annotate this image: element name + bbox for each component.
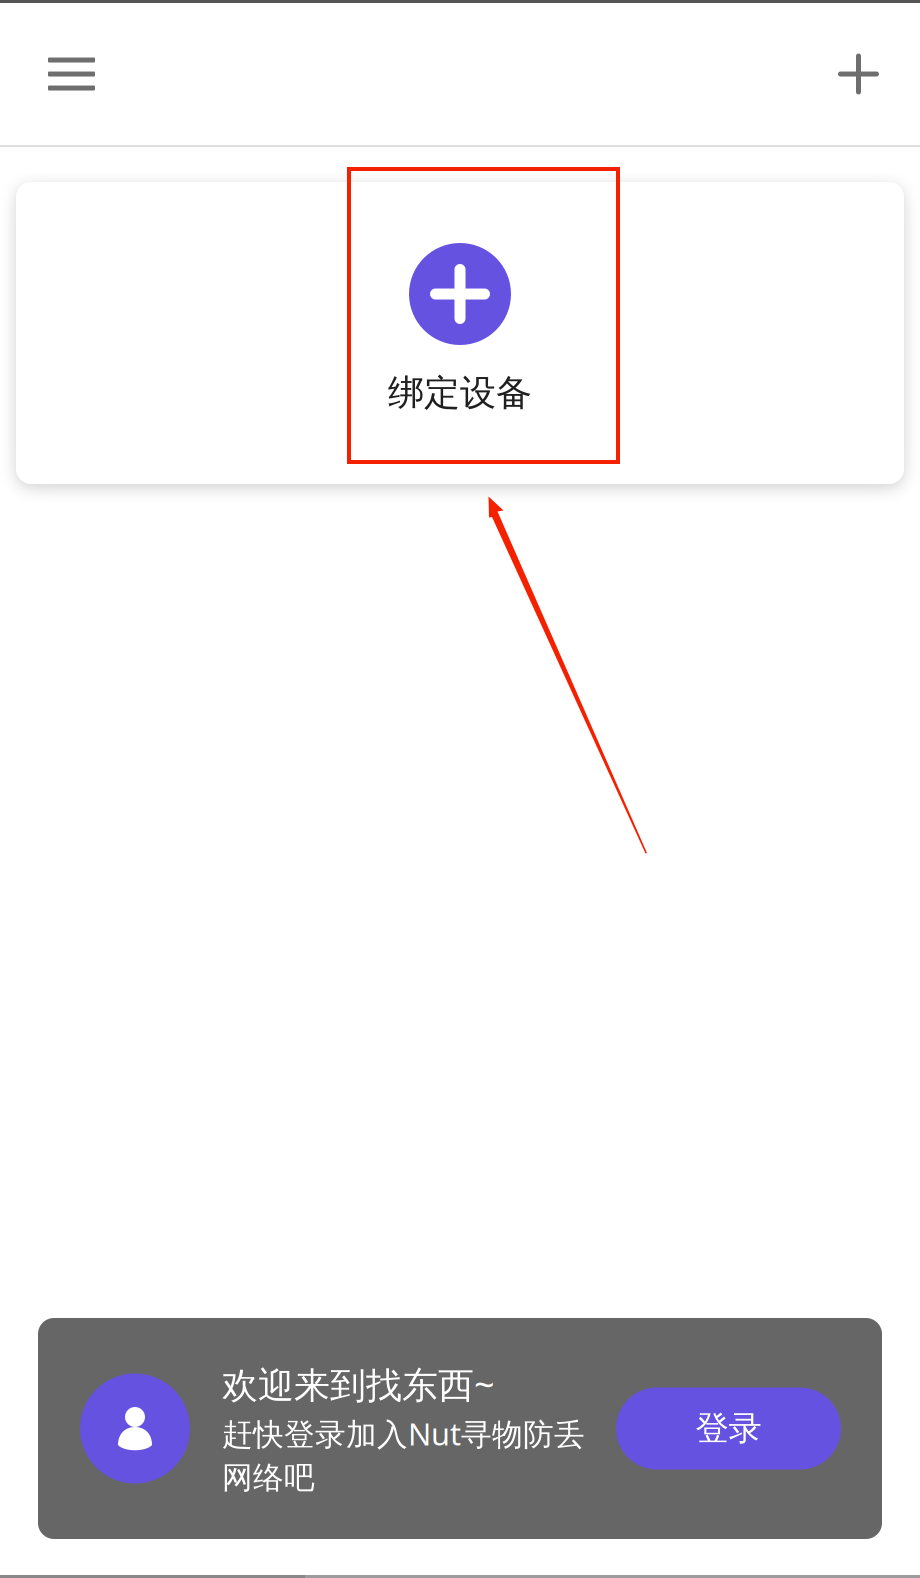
staticText: 绑定设备 bbox=[388, 371, 532, 415]
button[interactable]: 绑定设备 bbox=[323, 182, 597, 484]
staticText: 网络吧 bbox=[222, 1459, 315, 1497]
staticText: 欢迎来到找东西~ bbox=[222, 1360, 495, 1408]
button[interactable]: 登录 bbox=[616, 1387, 841, 1469]
button[interactable]: Menu bbox=[26, 29, 117, 118]
staticText: 登录 bbox=[695, 1408, 761, 1449]
staticText: 赶快登录加入Nut寻物防丢 bbox=[222, 1413, 585, 1454]
button[interactable]: Add device bbox=[823, 23, 894, 124]
